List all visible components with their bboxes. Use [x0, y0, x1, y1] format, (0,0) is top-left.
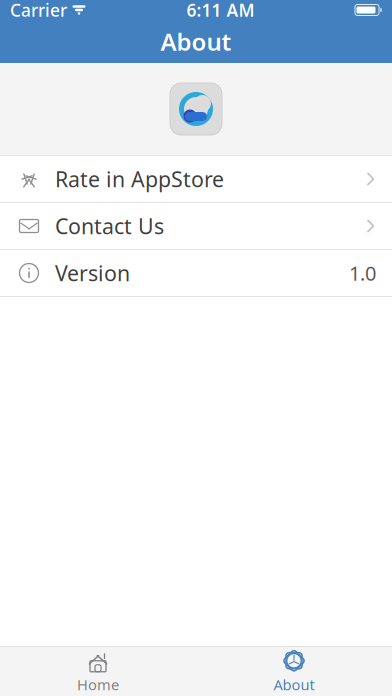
button[interactable]: Rate in AppStore [0, 156, 392, 202]
staticText: About [273, 675, 314, 694]
button[interactable]: Version [0, 250, 392, 296]
staticText: 6:11 AM [186, 0, 254, 21]
button[interactable]: About [196, 647, 392, 696]
button[interactable]: Contact Us [0, 203, 392, 249]
button[interactable]: Home [0, 647, 196, 696]
staticText: Contact Us [55, 212, 164, 240]
staticText: About [160, 26, 231, 57]
staticText: 1.0 [349, 260, 376, 286]
staticText: Carrier [10, 0, 67, 21]
staticText: Version [55, 259, 130, 287]
staticText: Rate in AppStore [55, 165, 224, 193]
staticText: Home [77, 675, 119, 694]
